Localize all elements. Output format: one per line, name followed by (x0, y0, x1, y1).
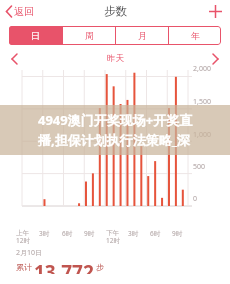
staticText: 6时 (150, 229, 161, 238)
button[interactable]: 月 (116, 26, 168, 45)
staticText: 3时 (39, 229, 50, 238)
staticText: 1,000 (193, 130, 211, 140)
staticText: 500 (193, 162, 206, 172)
staticText: 9时 (172, 229, 183, 238)
button[interactable]: Add (201, 2, 230, 21)
staticText: 2,000 (193, 64, 211, 74)
staticText: 步 (96, 262, 104, 272)
staticText: 播,担保计划执行法策略_深 (38, 131, 191, 149)
staticText: 日 (31, 30, 40, 41)
staticText: 年 (191, 30, 200, 41)
staticText: 下午 12时 (106, 229, 120, 245)
staticText: 4949澳门开奖现场+开奖直 (38, 111, 193, 129)
staticText: 上午 12时 (16, 229, 30, 245)
staticText: 0 (193, 194, 198, 204)
button[interactable]: 周 (63, 26, 115, 45)
button[interactable]: 日 (9, 26, 62, 45)
staticText: 2月10日 (16, 248, 43, 258)
staticText: 昨天 (107, 53, 124, 64)
staticText: 返回 (14, 5, 34, 18)
button[interactable]: Previous day (0, 52, 29, 66)
button[interactable]: 年 (169, 26, 221, 45)
button[interactable]: 返回 (0, 2, 42, 21)
staticText: 9时 (84, 229, 95, 238)
staticText: 步数 (104, 4, 127, 18)
staticText: 13,772 (34, 259, 94, 274)
button[interactable]: Next day (201, 52, 230, 66)
staticText: 6时 (62, 229, 73, 238)
staticText: 月 (138, 30, 147, 41)
staticText: 1,500 (193, 97, 211, 107)
staticText: 3时 (128, 229, 139, 238)
staticText: 累计 (16, 262, 32, 272)
staticText: 周 (85, 30, 94, 41)
